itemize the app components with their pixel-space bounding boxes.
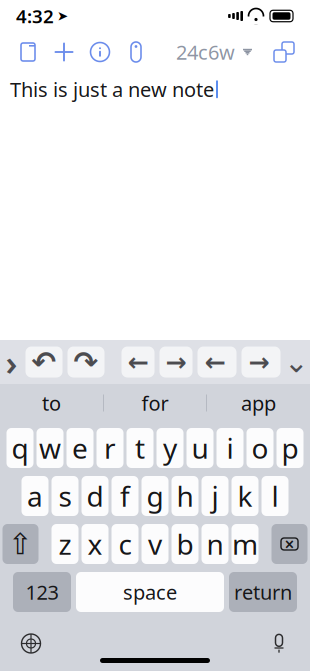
staticText: 4:32 [16,4,54,28]
staticText: ⇧ [8,527,33,561]
button[interactable]: Cursor left [121,346,154,377]
staticText: i [226,429,233,467]
staticText: to [42,390,61,416]
button[interactable]: u [186,428,213,468]
button[interactable]: app [207,384,310,422]
staticText: space [123,579,177,605]
staticText: y [163,429,177,467]
staticText: f [120,477,130,515]
staticText: app [241,390,276,416]
button[interactable]: s [51,476,78,516]
button[interactable]: e [66,428,93,468]
staticText: This is just a new note [10,76,214,103]
button[interactable]: c [111,524,138,564]
staticText: b [176,525,193,563]
button[interactable]: Add [46,34,82,70]
button[interactable]: j [201,476,228,516]
button[interactable]: m [231,524,258,564]
staticText: o [251,429,268,467]
button[interactable]: g [141,476,168,516]
staticText: e [72,429,88,467]
button[interactable]: t [126,428,153,468]
button[interactable]: Undo [25,346,62,377]
button[interactable]: to [0,384,103,422]
staticText: → [248,348,269,376]
staticText: m [232,525,258,563]
button[interactable]: for [104,384,206,422]
button[interactable]: k [231,476,258,516]
staticText: 123 [25,579,58,605]
staticText: ➤ [57,8,68,23]
staticText: for [141,390,168,416]
staticText: ↶ [31,345,56,379]
button[interactable]: y [156,428,183,468]
staticText: › [5,339,17,385]
button[interactable]: Information [82,34,118,70]
button[interactable]: Tag [118,34,154,70]
button[interactable]: p [276,428,303,468]
staticText: z [58,525,71,563]
staticText: r [104,429,116,467]
button[interactable]: → [241,346,280,377]
button[interactable]: Hide toolbar [285,346,307,377]
button[interactable]: Cursor right [159,346,192,377]
button[interactable]: x [81,524,108,564]
button[interactable]: More tools [2,346,20,377]
staticText: g [146,477,163,515]
button[interactable]: d [81,476,108,516]
staticText: q [11,429,28,467]
button[interactable]: Delete [271,524,307,564]
staticText: ← [127,348,148,376]
staticText: u [191,429,208,467]
button[interactable]: return [229,572,297,612]
button[interactable]: r [96,428,123,468]
button[interactable]: Redo [67,346,104,377]
button[interactable]: Dictation [260,626,298,660]
button[interactable]: l [261,476,288,516]
staticText: a [27,477,43,515]
staticText: d [86,477,103,515]
staticText: × [284,532,294,555]
button[interactable]: New note [10,34,46,70]
staticText: 24c6w [176,39,235,65]
staticText: s [58,477,71,515]
staticText: ← [204,348,225,376]
button[interactable]: Shift [2,524,38,564]
staticText: l [271,477,278,515]
button[interactable]: i [216,428,243,468]
staticText: x [87,525,102,563]
staticText: ↷ [73,345,98,379]
staticText: p [281,429,298,467]
button[interactable]: f [111,476,138,516]
staticText: t [135,429,145,467]
staticText: n [206,525,223,563]
button[interactable]: b [171,524,198,564]
button[interactable]: a [21,476,48,516]
button[interactable]: All notes [268,34,300,70]
button[interactable]: v [141,524,168,564]
button[interactable]: ← [197,346,236,377]
staticText: j [211,477,218,515]
staticText: w [39,429,61,467]
button[interactable]: 24c6w [172,34,256,70]
button[interactable]: 123 [13,572,71,612]
button[interactable]: w [36,428,63,468]
button[interactable]: Next keyboard [12,626,50,660]
button[interactable]: o [246,428,273,468]
staticText: → [165,348,186,376]
button[interactable]: q [6,428,33,468]
button[interactable]: z [51,524,78,564]
button[interactable]: h [171,476,198,516]
staticText: v [148,525,162,563]
button[interactable]: space [76,572,224,612]
staticText: return [234,579,292,605]
staticText: c [118,525,131,563]
staticText: ⌄ [284,345,309,379]
button[interactable]: n [201,524,228,564]
staticText: h [176,477,193,515]
staticText: k [237,477,252,515]
